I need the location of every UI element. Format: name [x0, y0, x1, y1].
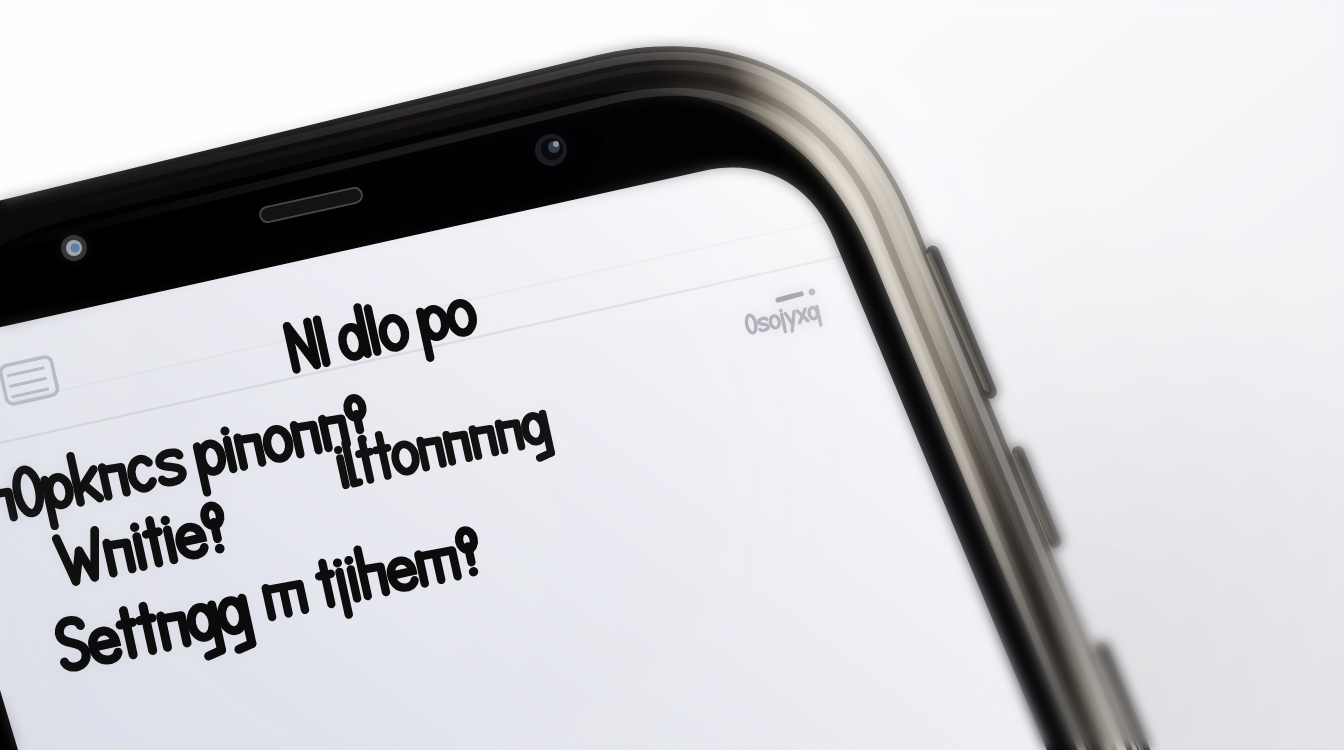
button[interactable]: Phone showing the app screen [0, 0, 1344, 750]
